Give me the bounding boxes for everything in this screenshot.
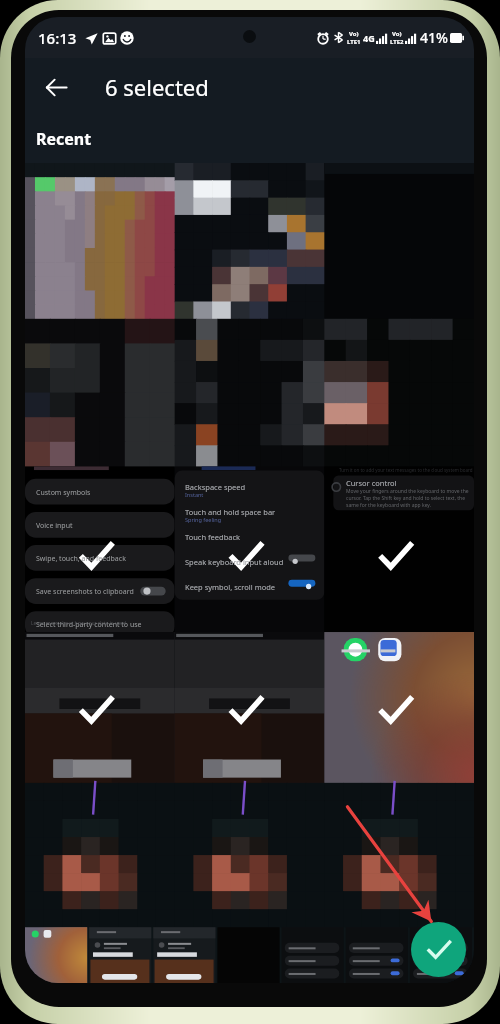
staticText: Spring feeling: [185, 516, 222, 523]
staticText: Move your fingers around the keyboard to…: [346, 488, 469, 509]
staticText: Touch feedback: [185, 532, 241, 542]
staticText: 6 selected: [105, 72, 209, 102]
staticText: Backspace speed: [185, 482, 246, 492]
staticText: 4G: [363, 32, 375, 44]
staticText: 41%: [420, 28, 448, 47]
staticText: Select third-party content to use: [36, 620, 142, 630]
staticText: 16:13: [38, 28, 77, 48]
staticText: Vo): [349, 30, 359, 38]
button[interactable]: Confirm selection: [411, 922, 466, 977]
staticText: Voice input: [36, 521, 73, 531]
staticText: Keep symbol, scroll mode: [185, 582, 276, 592]
button[interactable]: Back: [37, 68, 75, 106]
staticText: Learn more about how your data is used: [31, 620, 127, 627]
staticText: Speak keyboard input aloud: [185, 557, 284, 567]
staticText: Touch and hold space bar: [185, 507, 276, 517]
staticText: Turn it on to add your text messages to …: [339, 467, 473, 473]
staticText: Custom symbols: [36, 488, 91, 498]
staticText: LTE1: [347, 38, 361, 46]
staticText: Recent: [36, 128, 92, 150]
staticText: Instant: [185, 491, 204, 498]
staticText: Swipe, touch, and feedback: [36, 554, 126, 564]
staticText: Cursor control: [346, 478, 397, 488]
staticText: Save screenshots to clipboard: [36, 587, 134, 597]
staticText: LTE2: [390, 38, 404, 46]
staticText: Vo): [392, 30, 402, 38]
